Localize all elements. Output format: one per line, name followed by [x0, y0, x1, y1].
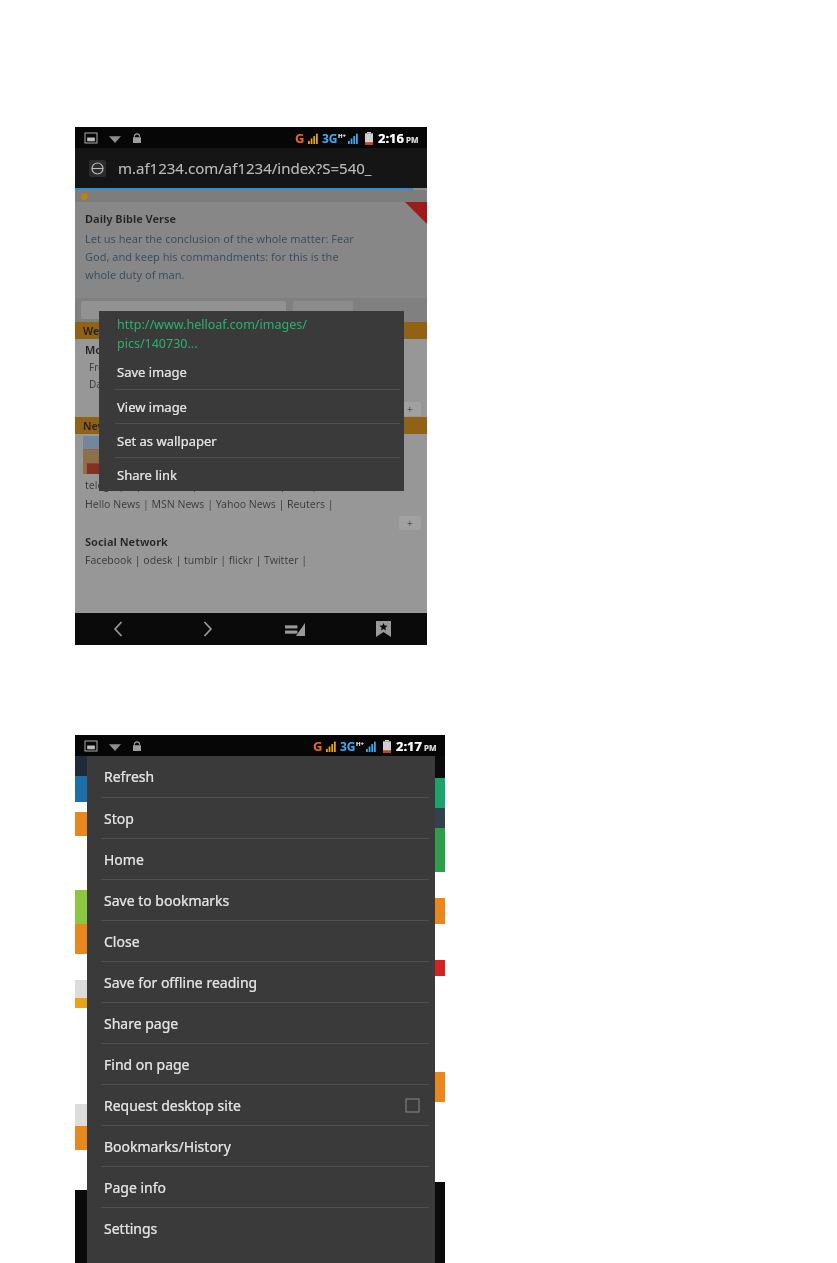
staticText: God, and keep his commandments: for this…	[85, 249, 339, 264]
button[interactable]: Share link	[99, 457, 404, 491]
staticText: G	[295, 129, 305, 147]
button[interactable]: Bookmarks	[339, 613, 427, 645]
staticText: +	[407, 402, 413, 416]
button[interactable]: Back	[75, 613, 163, 645]
button[interactable]: Settings	[87, 1207, 435, 1248]
staticText: Monday	[85, 342, 130, 357]
staticText: Save image	[117, 363, 187, 381]
button[interactable]: Close	[87, 920, 435, 961]
staticText: telegraph | buzzfeed | businessinsider |…	[85, 478, 317, 492]
staticText: Find on page	[104, 1055, 190, 1074]
button[interactable]: Save image	[99, 355, 404, 389]
staticText: 2:16	[378, 129, 404, 147]
button[interactable]: Stop	[87, 797, 435, 838]
staticText: Home	[104, 850, 144, 869]
staticText: Refresh	[104, 767, 155, 786]
staticText: Bookmarks/History	[104, 1137, 231, 1156]
staticText: +	[407, 516, 413, 530]
button[interactable]: m.af1234.com/af1234/index?S=540_	[75, 148, 427, 188]
button[interactable]: Tabs	[251, 613, 339, 645]
staticText: Facebook | odesk | tumblr | flickr | Twi…	[85, 553, 307, 567]
button[interactable]	[293, 301, 353, 319]
button[interactable]: Find on page	[87, 1043, 435, 1084]
staticText: H+	[356, 740, 365, 748]
staticText: 3G	[322, 130, 338, 146]
staticText: Request desktop site	[104, 1096, 241, 1115]
staticText: PM	[406, 134, 419, 145]
staticText: Let us hear the conclusion of the whole …	[85, 231, 354, 246]
staticText: Settings	[104, 1219, 158, 1238]
button[interactable]: +	[399, 402, 421, 416]
button[interactable]: Weather	[75, 322, 427, 339]
staticText: H+	[338, 132, 347, 140]
staticText: m.af1234.com/af1234/index?S=540_	[118, 158, 372, 178]
staticText: Save to bookmarks	[104, 891, 230, 910]
staticText: Fresno, CA	[89, 360, 139, 374]
button[interactable]: Save to bookmarks	[87, 879, 435, 920]
staticText: http://www.helloaf.com/images/	[117, 316, 307, 333]
button[interactable]: Save for offline reading	[87, 961, 435, 1002]
staticText: Stop	[104, 809, 134, 828]
staticText: Daily Bible Verse	[85, 211, 177, 226]
staticText: View image	[117, 398, 187, 416]
staticText: G	[313, 737, 323, 755]
button[interactable]: Page info	[87, 1166, 435, 1207]
button[interactable]: Bookmarks/History	[87, 1125, 435, 1166]
button[interactable]: +	[399, 516, 421, 530]
button[interactable]: Refresh	[87, 756, 435, 797]
staticText: News	[83, 419, 112, 433]
staticText: Close	[104, 932, 140, 951]
staticText: Share page	[104, 1014, 179, 1033]
staticText: PM	[424, 742, 437, 753]
staticText: whole duty of man.	[85, 267, 185, 282]
button[interactable]: Forward	[163, 613, 251, 645]
button[interactable]: Set as wallpaper	[99, 423, 404, 457]
button[interactable]: Home	[87, 838, 435, 879]
staticText: Hello News | MSN News | Yahoo News | Reu…	[85, 497, 334, 511]
button[interactable]: Share page	[87, 1002, 435, 1043]
staticText: Day 95 F	[89, 377, 129, 391]
button[interactable]: View image	[99, 389, 404, 423]
button[interactable]: Request desktop site	[87, 1084, 435, 1125]
staticText: Social Network	[85, 534, 168, 549]
staticText: Share link	[117, 466, 177, 484]
staticText: 2:17	[396, 737, 422, 755]
staticText: Save for offline reading	[104, 973, 258, 992]
staticText: Page info	[104, 1178, 167, 1197]
button[interactable]	[81, 301, 286, 319]
button[interactable]: News	[75, 417, 427, 434]
staticText: Weather	[83, 324, 128, 338]
staticText: pics/140730...	[117, 335, 198, 352]
staticText: Set as wallpaper	[117, 432, 217, 450]
staticText: 3G	[340, 738, 356, 754]
